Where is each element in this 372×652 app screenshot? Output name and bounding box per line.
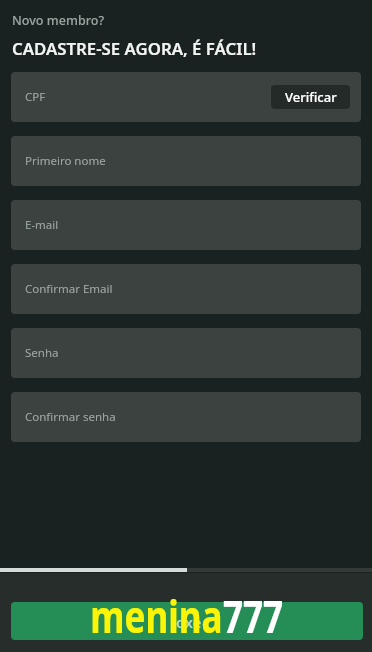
button[interactable]: CPF [11,72,361,122]
button[interactable]: Senha [11,328,361,378]
button[interactable]: Confirmar senha [11,392,361,442]
staticText: Senha [25,345,59,361]
staticText: Verificar [285,88,337,106]
staticText: CPF [25,89,46,105]
button[interactable]: E-mail [11,200,361,250]
staticText: Novo membro? [12,12,105,29]
staticText: E-mail [25,217,59,233]
staticText: 777 [223,585,284,646]
button[interactable]: menina777 home [11,602,363,640]
button[interactable]: Verificar [271,85,350,109]
button[interactable]: Confirmar Email [11,264,361,314]
staticText: Confirmar Email [25,281,113,297]
staticText: Confirmar senha [25,409,116,425]
staticText: Primeiro nome [25,153,106,169]
button[interactable]: Primeiro nome [11,136,361,186]
staticText: CADASTRE-SE AGORA, É FÁCIL! [12,37,257,60]
staticText: oxe [176,612,202,632]
staticText: menina [90,585,223,646]
